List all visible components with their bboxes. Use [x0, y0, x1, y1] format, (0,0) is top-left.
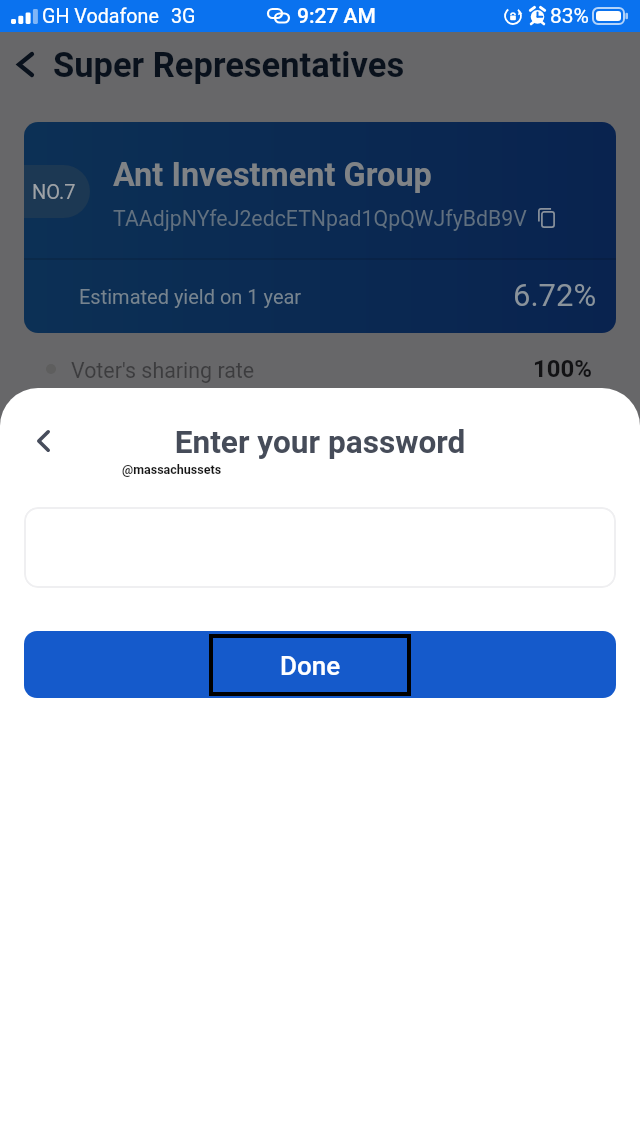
staticText: @massachussets [122, 462, 222, 477]
staticText: GH Vodafone [42, 5, 159, 28]
staticText: Enter your password [0, 424, 640, 461]
staticText: 100% [533, 355, 593, 383]
button[interactable]: Back [18, 416, 68, 466]
button[interactable]: Back [0, 39, 50, 89]
button[interactable]: Done [24, 631, 616, 698]
staticText: 9:27 AM [297, 4, 376, 29]
staticText: 6.72% [513, 277, 597, 313]
staticText: TAAdjpNYfeJ2edcETNpad1QpQWJfyBdB9V [113, 206, 527, 231]
button[interactable]: NO.7 [24, 122, 616, 333]
staticText: Super Representatives [53, 45, 405, 85]
staticText: Done [280, 651, 341, 681]
staticText: Estimated yield on 1 year [79, 285, 302, 308]
staticText: NO.7 [32, 180, 76, 203]
button[interactable] [24, 507, 616, 588]
staticText: 83% [550, 4, 589, 29]
staticText: Ant Investment Group [113, 156, 432, 194]
button[interactable]: Voter's sharing rate [0, 348, 640, 394]
staticText: Voter's sharing rate [71, 358, 255, 383]
button[interactable]: Copy address [530, 202, 562, 234]
staticText: 3G [171, 5, 196, 28]
